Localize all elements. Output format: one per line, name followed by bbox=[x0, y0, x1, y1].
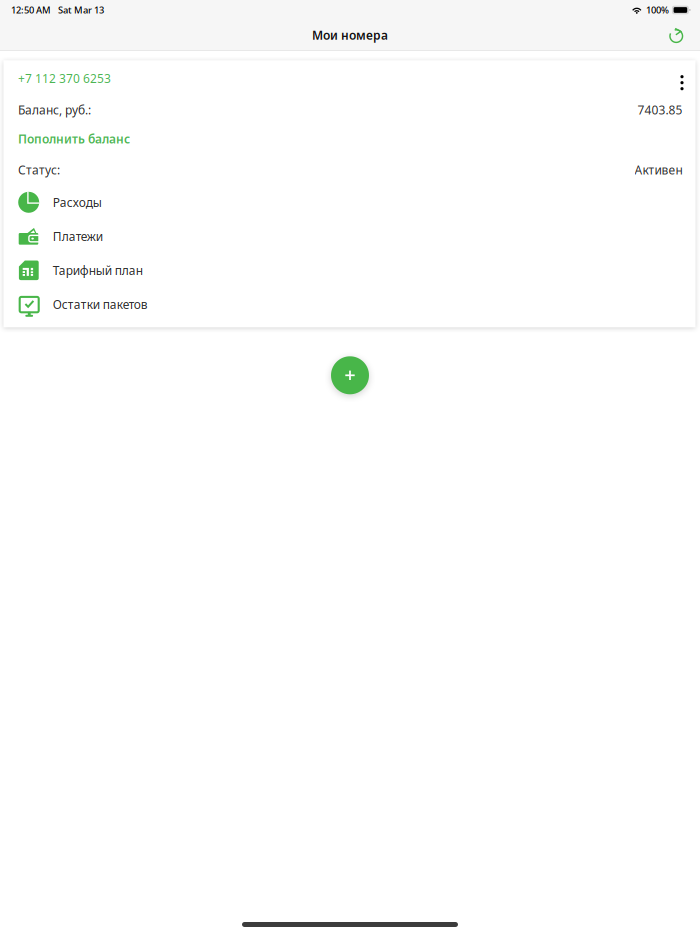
staticText: 7403.85 bbox=[637, 102, 682, 118]
staticText: Расходы bbox=[53, 194, 102, 210]
staticText: Баланс, руб.: bbox=[18, 102, 91, 118]
button[interactable]: More options bbox=[677, 66, 687, 90]
staticText: Платежи bbox=[53, 228, 103, 244]
staticText: Остатки пакетов bbox=[53, 296, 148, 312]
button[interactable]: Платежи bbox=[3, 219, 695, 253]
button[interactable]: Пополнить баланс bbox=[3, 123, 695, 154]
staticText: Sat Mar 13 bbox=[58, 4, 104, 16]
staticText: Пополнить баланс bbox=[18, 131, 130, 147]
staticText: +7 112 370 6253 bbox=[18, 70, 111, 86]
staticText: Тарифный план bbox=[53, 262, 143, 278]
staticText: Статус: bbox=[18, 162, 60, 178]
staticText: Мои номера bbox=[312, 27, 388, 43]
button[interactable]: Остатки пакетов bbox=[3, 287, 695, 321]
staticText: Активен bbox=[634, 162, 682, 178]
button[interactable]: Тарифный план bbox=[3, 253, 695, 287]
button[interactable]: Расходы bbox=[3, 185, 695, 219]
staticText: 12:50 AM bbox=[11, 4, 51, 16]
button[interactable]: Refresh bbox=[662, 20, 692, 50]
button[interactable]: Add number bbox=[331, 356, 369, 394]
staticText: 100% bbox=[646, 4, 669, 16]
